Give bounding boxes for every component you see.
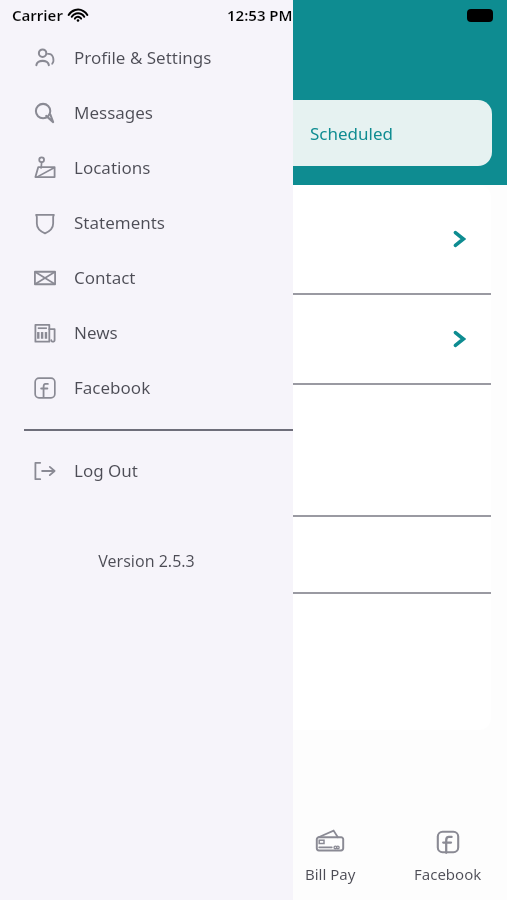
staticText: Facebook xyxy=(414,864,482,884)
staticText: Statements xyxy=(74,211,166,234)
other: Open details xyxy=(449,229,469,249)
button[interactable]: Bill Pay xyxy=(271,810,389,900)
staticText: Profile & Settings xyxy=(74,46,212,69)
button[interactable]: Statements xyxy=(0,195,293,250)
staticText: Facebook xyxy=(74,376,151,399)
button[interactable] xyxy=(16,385,491,515)
button[interactable]: Open details xyxy=(16,185,491,293)
button[interactable]: Contact xyxy=(0,250,293,305)
button[interactable]: Profile & Settings xyxy=(0,30,293,85)
button[interactable]: Messages xyxy=(0,85,293,140)
staticText: Contact xyxy=(74,266,136,289)
staticText: Messages xyxy=(74,101,154,124)
other: Open details xyxy=(449,329,469,349)
button[interactable]: Log Out xyxy=(0,443,293,498)
staticText: Version 2.5.3 xyxy=(0,550,293,572)
staticText: News xyxy=(74,321,118,344)
button[interactable]: Facebook xyxy=(389,810,507,900)
staticText: 12:53 PM xyxy=(227,5,293,25)
button[interactable] xyxy=(16,517,491,592)
staticText: Log Out xyxy=(74,459,138,482)
staticText: Carrier xyxy=(12,5,63,25)
button[interactable]: Locations xyxy=(0,140,293,195)
button[interactable]: Scheduled xyxy=(210,100,492,166)
button[interactable]: Open details xyxy=(16,295,491,383)
button[interactable]: Facebook xyxy=(0,360,293,415)
button[interactable]: News xyxy=(0,305,293,360)
staticText: Bill Pay xyxy=(305,864,356,884)
staticText: Scheduled xyxy=(310,122,393,145)
staticText: Locations xyxy=(74,156,151,179)
